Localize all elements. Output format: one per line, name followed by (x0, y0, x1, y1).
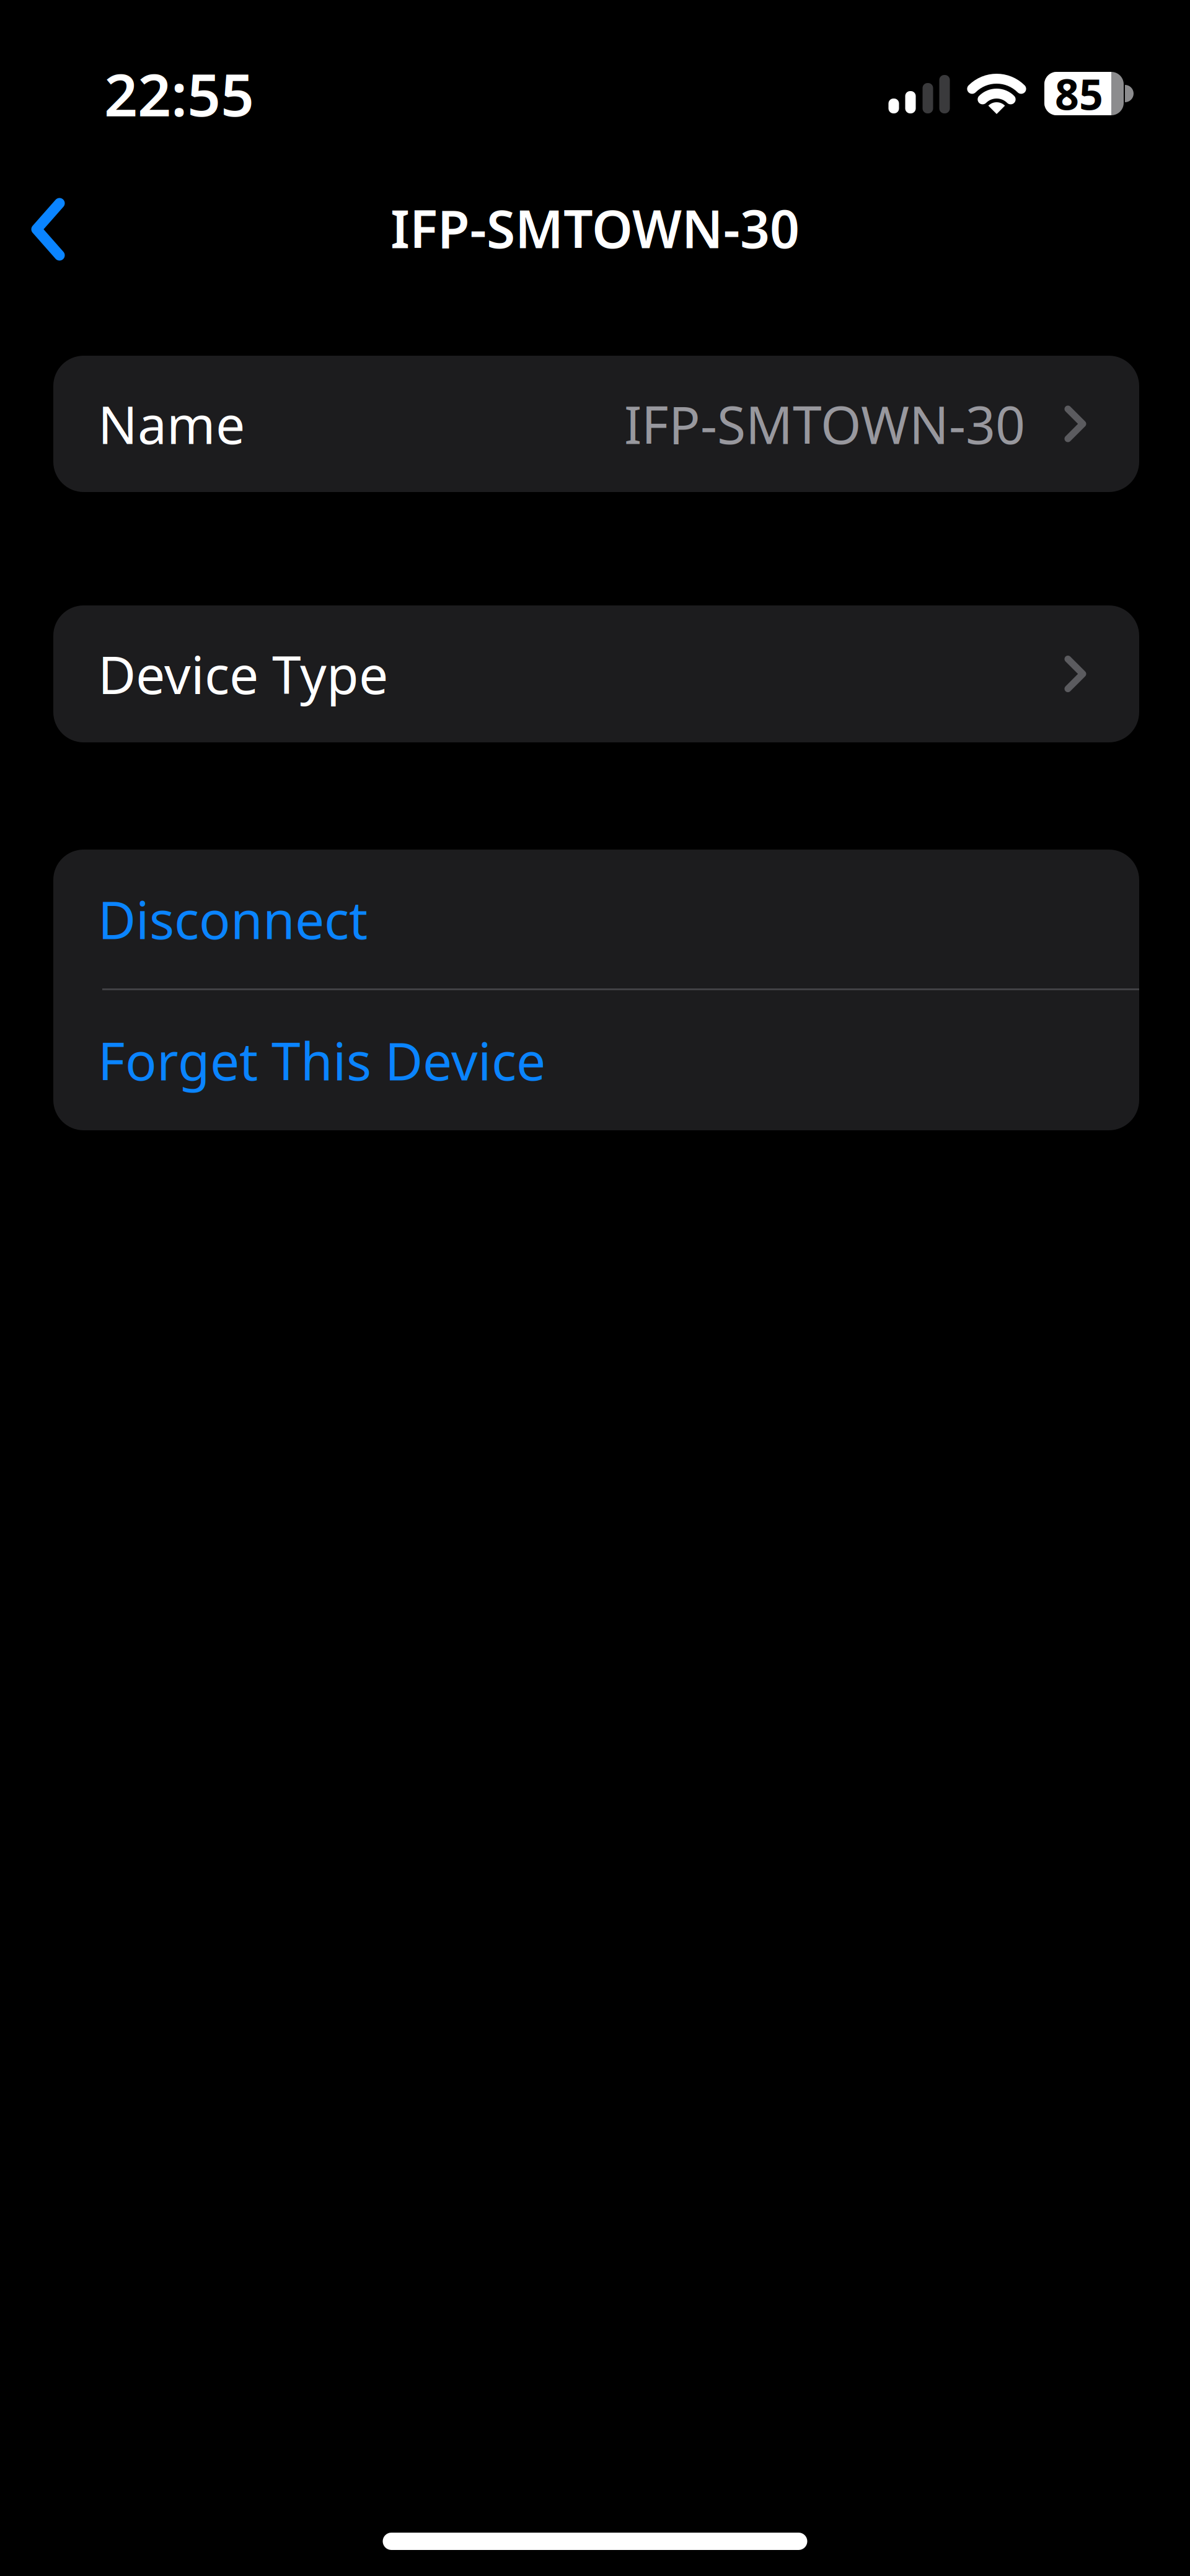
staticText: IFP-SMTOWN-30 (624, 389, 1025, 458)
staticText: 22:55 (104, 55, 254, 132)
button[interactable] (0, 0, 1190, 2576)
button[interactable]: Name (53, 356, 1139, 492)
staticText: Name (98, 389, 245, 458)
staticText: Device Type (98, 639, 388, 708)
button[interactable]: Disconnect (53, 850, 1139, 988)
staticText: Forget This Device (98, 1026, 545, 1095)
button[interactable]: Device Type (53, 605, 1139, 742)
staticText: IFP-SMTOWN-30 (390, 193, 800, 263)
staticText: 85 (1055, 66, 1103, 122)
staticText: Disconnect (98, 884, 368, 953)
button[interactable]: Forget This Device (53, 990, 1139, 1130)
